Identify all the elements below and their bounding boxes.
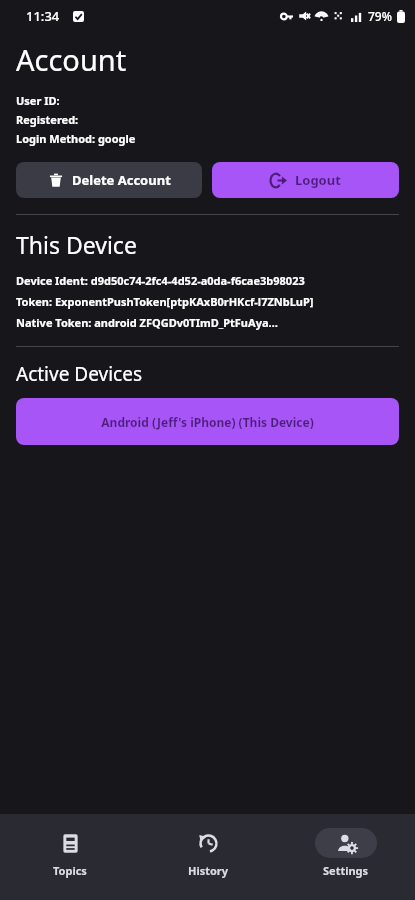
other: Topics bbox=[60, 833, 81, 854]
staticText: 11:34 bbox=[26, 7, 60, 25]
button[interactable]: Delete Account bbox=[16, 162, 202, 198]
staticText: This Device bbox=[16, 229, 137, 260]
staticText: Settings bbox=[323, 863, 369, 878]
staticText: Registered: bbox=[16, 112, 79, 127]
staticText: Topics bbox=[53, 863, 87, 878]
staticText: Delete Account bbox=[72, 171, 171, 189]
staticText: Login Method: google bbox=[16, 131, 136, 146]
button[interactable]: Logout bbox=[212, 162, 399, 198]
staticText: Account bbox=[16, 40, 127, 79]
staticText: User ID: bbox=[16, 93, 60, 108]
staticText: Active Devices bbox=[16, 361, 143, 387]
staticText: 79% bbox=[368, 8, 392, 24]
other: Settings bbox=[336, 833, 357, 854]
staticText: Android (Jeff's iPhone) (This Device) bbox=[101, 414, 314, 430]
button[interactable]: Topics bbox=[0, 814, 139, 900]
button[interactable]: Settings bbox=[277, 814, 415, 900]
staticText: Token: ExponentPushToken[ptpKAxB0rHKcf-l… bbox=[16, 294, 314, 309]
staticText: Logout bbox=[295, 171, 341, 189]
button[interactable]: Android (Jeff's iPhone) (This Device) bbox=[16, 398, 399, 445]
button[interactable]: History bbox=[139, 814, 277, 900]
staticText: Native Token: android ZFQGDv0TImD_PtFuAy… bbox=[16, 315, 278, 330]
staticText: Device Ident: d9d50c74-2fc4-4d52-a0da-f6… bbox=[16, 273, 305, 288]
staticText: History bbox=[188, 863, 229, 878]
other: History bbox=[198, 833, 219, 854]
